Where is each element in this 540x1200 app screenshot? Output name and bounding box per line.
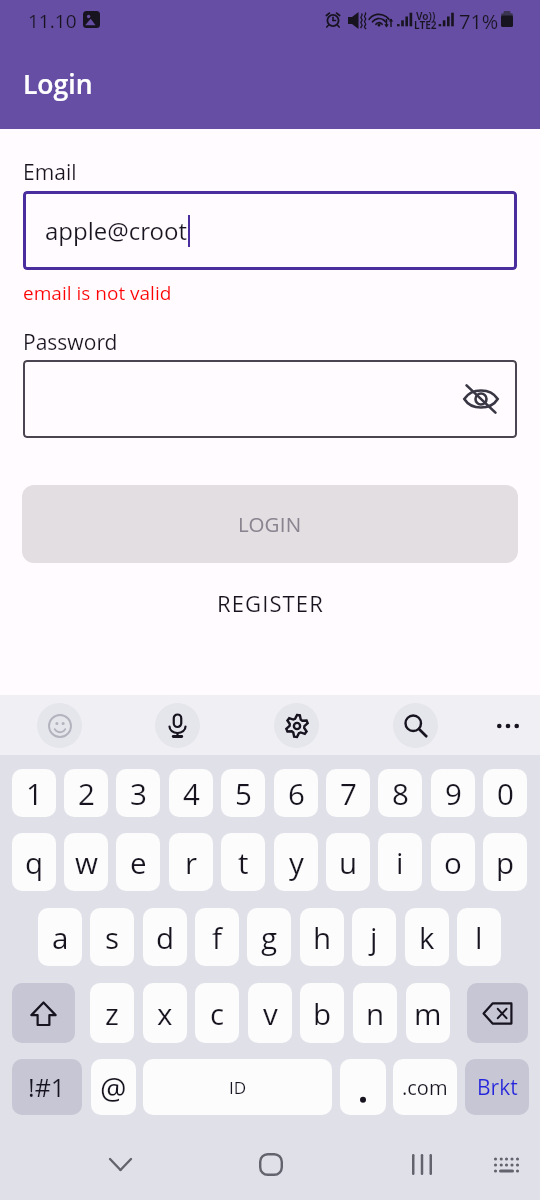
button[interactable]: e (116, 833, 160, 891)
button[interactable]: Home (245, 1147, 296, 1182)
button[interactable]: u (326, 833, 370, 891)
staticText: 9 (445, 773, 462, 813)
button[interactable]: .com (393, 1059, 457, 1115)
staticText: Login (23, 66, 93, 102)
button[interactable]: o (431, 833, 475, 891)
staticText: k (419, 917, 435, 957)
staticText: x (157, 993, 173, 1033)
button[interactable]: Change keyboard (481, 1147, 531, 1182)
staticText: r (185, 842, 198, 882)
staticText: g (261, 917, 278, 957)
staticText: z (105, 993, 119, 1033)
staticText: 3 (130, 773, 147, 813)
staticText: l (475, 917, 483, 957)
button[interactable]: p (483, 833, 527, 891)
staticText: s (105, 917, 120, 957)
button[interactable]: c (195, 983, 239, 1043)
button[interactable]: Backspace (467, 983, 528, 1043)
button[interactable]: Recents (397, 1147, 447, 1182)
button[interactable]: f (195, 908, 239, 966)
button[interactable]: Voice input (155, 703, 200, 748)
button[interactable]: Show password (457, 375, 505, 423)
button[interactable]: Search (393, 703, 438, 748)
button[interactable]: 1 (12, 769, 56, 817)
button[interactable]: w (64, 833, 108, 891)
staticText: b (313, 993, 332, 1033)
button[interactable]: i (378, 833, 422, 891)
staticText: !#1 (28, 1070, 66, 1104)
button[interactable]: LOGIN (22, 485, 518, 563)
button[interactable]: ID (143, 1059, 332, 1115)
staticText: REGISTER (217, 588, 324, 618)
staticText: 2 (78, 773, 95, 813)
staticText: 8 (392, 773, 409, 813)
staticText: n (366, 993, 385, 1033)
button[interactable]: 6 (274, 769, 318, 817)
button[interactable]: @ (91, 1059, 136, 1115)
button[interactable]: j (352, 908, 396, 966)
button[interactable]: 4 (169, 769, 213, 817)
staticText: d (156, 917, 175, 957)
staticText: o (444, 842, 462, 882)
staticText: .com (402, 1074, 448, 1101)
button[interactable]: s (90, 908, 134, 966)
staticText: email is not valid (23, 280, 172, 306)
button[interactable]: q (12, 833, 56, 891)
button[interactable]: REGISTER (193, 580, 348, 626)
staticText: LOGIN (238, 510, 302, 538)
button[interactable]: n (353, 983, 397, 1043)
button[interactable]: Show password (23, 360, 517, 438)
button[interactable]: k (405, 908, 449, 966)
button[interactable]: Brkt (465, 1059, 529, 1115)
button[interactable]: 3 (116, 769, 160, 817)
button[interactable]: v (248, 983, 292, 1043)
staticText: u (339, 842, 358, 882)
staticText: i (396, 842, 404, 882)
staticText: 11.10 (28, 8, 77, 34)
button[interactable]: 0 (483, 769, 527, 817)
staticText: ID (229, 1076, 247, 1099)
button[interactable]: y (274, 833, 318, 891)
staticText: Password (23, 328, 118, 357)
staticText: Email (23, 158, 77, 187)
staticText: t (238, 842, 249, 882)
staticText: LTE2 (414, 18, 437, 32)
button[interactable]: apple@croot (23, 191, 517, 270)
button[interactable]: l (457, 908, 501, 966)
button[interactable]: 7 (326, 769, 370, 817)
button[interactable] (340, 1059, 386, 1115)
button[interactable]: 2 (64, 769, 108, 817)
button[interactable]: x (143, 983, 187, 1043)
button[interactable]: 8 (378, 769, 422, 817)
button[interactable]: a (38, 908, 82, 966)
staticText: e (130, 842, 147, 882)
button[interactable]: Shift (12, 983, 75, 1043)
staticText: f (212, 917, 222, 957)
button[interactable]: 5 (221, 769, 265, 817)
staticText: 0 (497, 773, 514, 813)
staticText: q (25, 842, 44, 882)
staticText: Vo)) (416, 9, 436, 23)
staticText: 1 (26, 773, 43, 813)
button[interactable]: m (406, 983, 450, 1043)
staticText: 4 (183, 773, 200, 813)
other: Backspace (483, 1003, 512, 1024)
button[interactable]: z (90, 983, 134, 1043)
button[interactable]: !#1 (12, 1059, 82, 1115)
other: Shift (31, 1001, 56, 1026)
button[interactable]: d (143, 908, 187, 966)
button[interactable]: Settings (274, 703, 319, 748)
staticText: 5 (235, 773, 252, 813)
staticText: @ (100, 1067, 127, 1107)
staticText: apple@croot (45, 214, 188, 247)
button[interactable]: b (300, 983, 344, 1043)
button[interactable]: h (300, 908, 344, 966)
button[interactable]: Back (95, 1148, 145, 1181)
staticText: c (210, 993, 225, 1033)
button[interactable]: More options (485, 703, 530, 748)
button[interactable]: r (169, 833, 213, 891)
button[interactable]: Emoji (37, 703, 82, 748)
button[interactable]: g (247, 908, 291, 966)
button[interactable]: t (221, 833, 265, 891)
button[interactable]: 9 (431, 769, 475, 817)
